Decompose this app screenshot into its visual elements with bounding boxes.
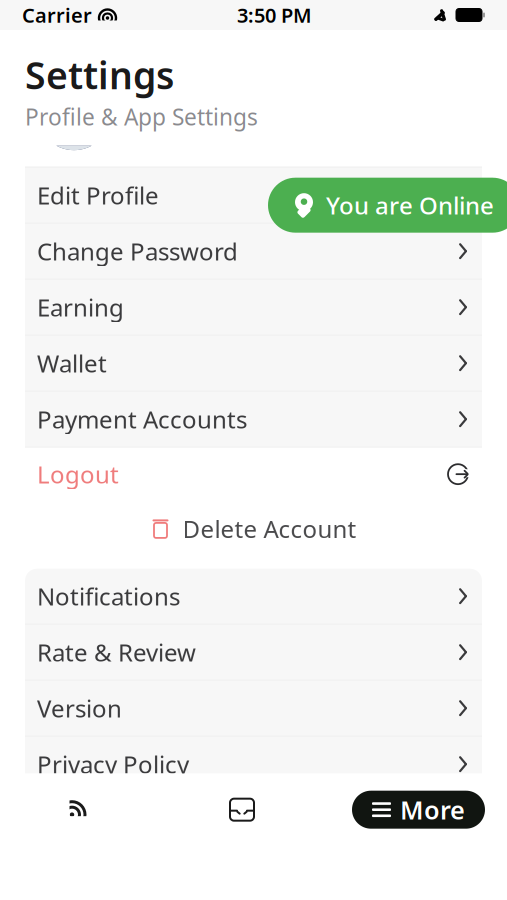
staticText: Payment Accounts <box>37 403 247 435</box>
button[interactable]: Privacy Policy <box>25 737 482 792</box>
button[interactable]: Feed <box>22 780 132 840</box>
button[interactable]: More <box>352 791 485 829</box>
button[interactable]: Rate & Review <box>25 625 482 680</box>
staticText: More <box>400 793 465 826</box>
staticText: Change Password <box>37 235 238 267</box>
staticText: Notifications <box>37 580 180 612</box>
staticText: Settings <box>25 50 174 100</box>
staticText: Carrier <box>22 2 92 28</box>
button[interactable]: Edit Profile <box>25 168 482 223</box>
staticText: Logout <box>37 458 119 490</box>
button[interactable]: Logout <box>25 448 482 501</box>
staticText: Version <box>37 692 122 724</box>
button[interactable]: Delete Account <box>25 501 482 557</box>
staticText: Profile & App Settings <box>25 102 258 132</box>
button[interactable]: Wallet <box>25 336 482 391</box>
button[interactable]: Terms of Service <box>25 793 482 848</box>
staticText: Wallet <box>37 347 107 379</box>
button[interactable]: Inbox <box>187 780 297 840</box>
staticText: Earning <box>37 291 124 323</box>
staticText: Delete Account <box>182 513 356 545</box>
staticText: driver@demo.com <box>129 118 326 148</box>
button[interactable]: Version <box>25 681 482 736</box>
staticText: You are Online <box>326 189 494 221</box>
staticText: Privacy Policy <box>37 748 189 780</box>
button[interactable]: Change Password <box>25 224 482 279</box>
staticText: Edit Profile <box>37 179 159 211</box>
button[interactable]: Payment Accounts <box>25 392 482 447</box>
staticText: 3:50 PM <box>237 2 312 28</box>
button[interactable]: Notifications <box>25 569 482 624</box>
staticText: Terms of Service <box>37 804 222 836</box>
button[interactable]: Earning <box>25 280 482 335</box>
staticText: Driver account <box>129 78 327 115</box>
button[interactable]: You are Online <box>268 178 507 233</box>
staticText: Rate & Review <box>37 636 196 668</box>
